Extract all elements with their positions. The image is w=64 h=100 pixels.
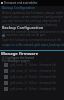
button[interactable]: grbl_nano_v1.1h.hex - firmware file xyxy=(0,86,64,92)
staticText: something goes wrong during flashing. xyxy=(2,23,58,27)
staticText: Backup Configuration xyxy=(2,25,44,30)
staticText: grbl_nano_v1.1h.hex - firmware file xyxy=(10,69,57,73)
staticText: 3. Configure the board xyxy=(2,56,34,60)
staticText: Type the following command and save the xyxy=(2,38,62,42)
staticText: Manage firmware xyxy=(1,51,39,57)
staticText: Backup Configuration xyxy=(2,6,36,10)
staticText: output to a file named grbl-nano_backup.… xyxy=(2,43,64,47)
staticText: grbl_nano_v1.1h.hex - firmware file xyxy=(10,81,57,85)
staticText: copy of your current machine configurati… xyxy=(2,15,64,19)
staticText: Before updating the firmware, always mak… xyxy=(2,11,64,15)
button[interactable]: grbl_nano_v1.1h.hex - firmware file xyxy=(0,62,64,68)
staticText: grbl_nano_v1.1h.hex - firmware file xyxy=(10,63,57,67)
button[interactable]: Menu xyxy=(0,0,64,6)
button[interactable]: grbl_nano_v1.1h.hex - firmware file xyxy=(0,68,64,74)
staticText: File Manager pages xyxy=(2,59,30,63)
button[interactable]: grbl_nano_v1.1h.hex - firmware file xyxy=(0,80,64,86)
button[interactable]: grbl_nano_v1.1h.hex - firmware file xyxy=(0,74,64,80)
staticText: grbl_nano_v1.1h.hex - firmware file xyxy=(10,75,57,79)
staticText: Firmware and assemblies xyxy=(4,1,38,5)
staticText: machine over the serial port. xyxy=(6,33,47,37)
staticText: you can restore the settings afterwards … xyxy=(2,19,60,23)
staticText: Open the console window and connect to t… xyxy=(2,30,64,34)
staticText: grbl_nano_v1.1h.hex - firmware file xyxy=(10,87,57,91)
